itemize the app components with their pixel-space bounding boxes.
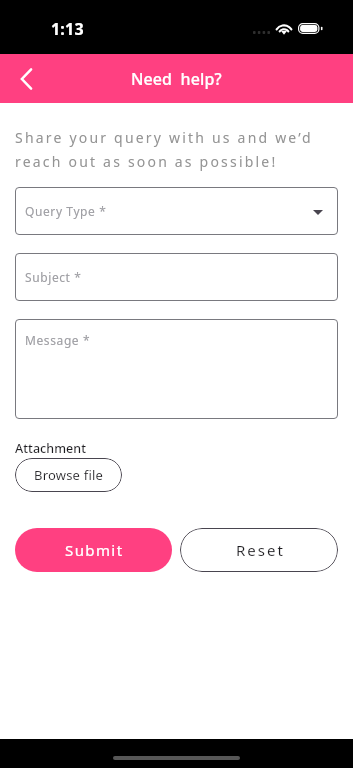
button[interactable]: Subject * xyxy=(15,253,338,301)
button[interactable]: Browse file xyxy=(15,458,122,492)
staticText: Reset xyxy=(236,540,285,560)
staticText: Attachment xyxy=(15,440,87,457)
button[interactable]: Back xyxy=(6,59,46,99)
button[interactable]: Message * xyxy=(15,319,338,419)
staticText: Query Type * xyxy=(25,203,107,219)
staticText: Subject * xyxy=(25,269,82,285)
staticText: Share your query with us and we’d reach … xyxy=(15,128,338,171)
staticText: Browse file xyxy=(34,466,104,484)
button[interactable]: Query Type * xyxy=(15,187,338,235)
button[interactable]: Submit xyxy=(15,528,172,572)
staticText: Submit xyxy=(65,540,124,560)
button[interactable]: Reset xyxy=(180,528,338,572)
staticText: Message * xyxy=(25,332,91,348)
staticText: 1:13 xyxy=(51,18,84,40)
staticText: Need help? xyxy=(131,68,222,90)
